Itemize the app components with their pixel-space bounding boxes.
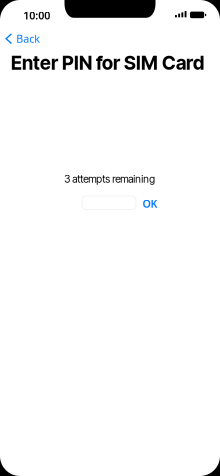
button[interactable]: OK	[137, 192, 162, 215]
staticText: Back	[16, 32, 40, 46]
button[interactable]: PIN	[82, 196, 136, 209]
button[interactable]: Back	[1, 30, 61, 48]
staticText: 10:00	[23, 8, 50, 23]
staticText: 3 attempts remaining	[64, 173, 155, 185]
staticText: Enter PIN for SIM Card	[11, 51, 204, 74]
staticText: OK	[142, 196, 157, 211]
